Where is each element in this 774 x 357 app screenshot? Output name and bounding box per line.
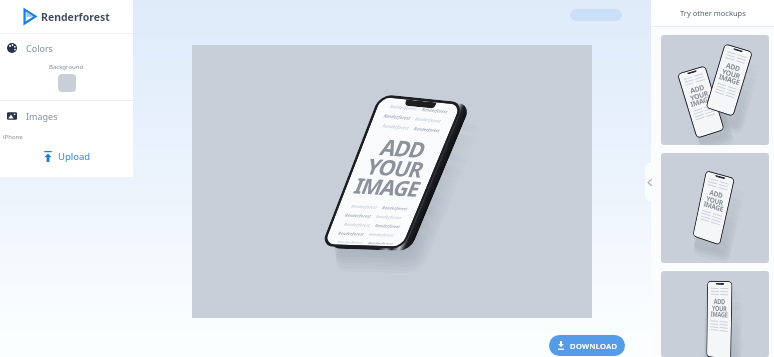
staticText: Renderforest (414, 116, 442, 124)
staticText: Images (26, 110, 58, 122)
staticText: DOWNLOAD (570, 341, 618, 351)
staticText: Renderforest (381, 205, 409, 212)
staticText: Renderforest (368, 232, 395, 238)
staticText: Renderforest (41, 10, 110, 24)
staticText: Colors (26, 42, 53, 54)
button[interactable]: DOWNLOAD (549, 335, 625, 356)
staticText: iPhone (3, 133, 23, 141)
staticText: Renderforest (350, 203, 378, 211)
staticText: Renderforest (337, 240, 364, 244)
staticText: Background (49, 63, 84, 71)
staticText: Renderforest (413, 126, 441, 134)
button[interactable]: Mockup style 3 (661, 271, 769, 357)
staticText: Try other mockups (680, 8, 746, 18)
button[interactable]: Mockup style 1 (661, 35, 769, 145)
staticText: Renderforest (374, 223, 401, 230)
staticText: Renderforest (368, 241, 394, 245)
button[interactable]: Upload (43, 150, 91, 163)
staticText: Upload (58, 150, 91, 163)
staticText: Renderforest (383, 113, 411, 122)
staticText: Renderforest (389, 103, 418, 112)
button[interactable]: Preview (570, 9, 622, 21)
button[interactable]: Mockup style 2 (661, 153, 769, 263)
staticText: Renderforest (343, 222, 371, 228)
staticText: ADD YOUR IMAGE (703, 187, 727, 214)
staticText: Renderforest (381, 123, 410, 131)
staticText: ADD YOUR IMAGE (717, 60, 745, 87)
button[interactable]: Renderforest (0, 0, 133, 33)
button[interactable]: Collapse panel (645, 163, 655, 201)
staticText: ADD YOUR IMAGE (350, 130, 441, 202)
staticText: Renderforest (420, 107, 449, 115)
staticText: ADD YOUR IMAGE (710, 297, 728, 320)
staticText: Renderforest (344, 212, 372, 219)
staticText: Renderforest (375, 214, 402, 221)
staticText: Renderforest (337, 231, 365, 237)
staticText: ADD YOUR IMAGE (685, 82, 712, 109)
button[interactable]: Background colour swatch (58, 74, 76, 92)
